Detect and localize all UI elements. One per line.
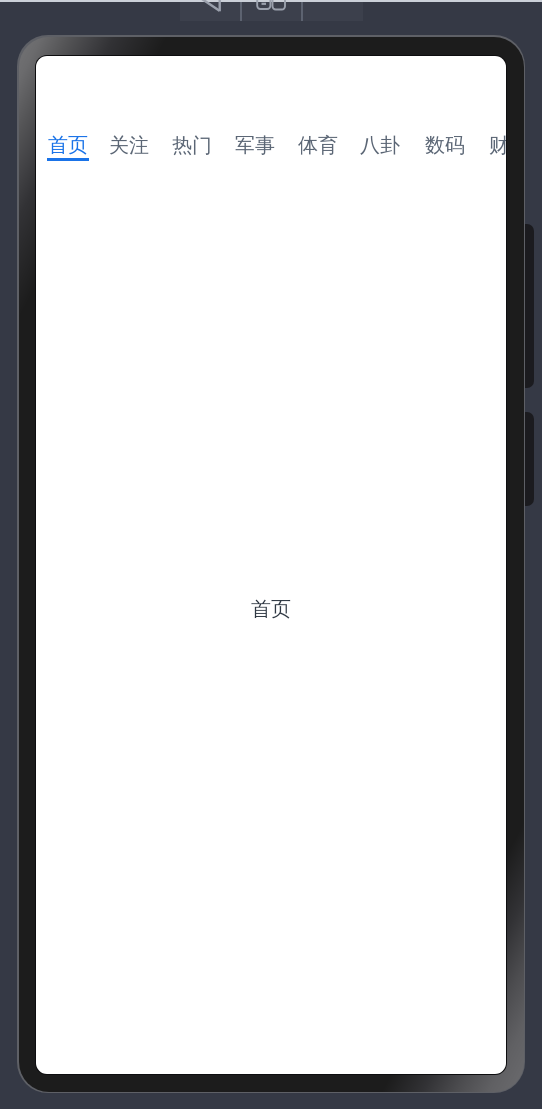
button[interactable] — [288, 133, 350, 189]
staticText: 关注 — [109, 133, 149, 158]
staticText: 军事 — [235, 133, 275, 158]
button[interactable] — [37, 133, 99, 189]
button[interactable] — [350, 133, 412, 189]
staticText: 数码 — [425, 133, 465, 158]
staticText: 热门 — [172, 133, 212, 158]
button[interactable]: Device toolbar — [180, 2, 363, 21]
button[interactable] — [479, 133, 506, 189]
button[interactable]: Power — [510, 412, 534, 506]
button[interactable] — [99, 133, 161, 189]
staticText: 财经 — [489, 133, 506, 158]
staticText: 首页 — [48, 133, 88, 158]
staticText: 首页 — [251, 597, 291, 622]
staticText: 体育 — [298, 133, 338, 158]
button[interactable]: Volume — [510, 224, 534, 388]
button[interactable] — [415, 133, 477, 189]
button[interactable] — [162, 133, 224, 189]
staticText: 八卦 — [360, 133, 400, 158]
button[interactable] — [225, 133, 287, 189]
